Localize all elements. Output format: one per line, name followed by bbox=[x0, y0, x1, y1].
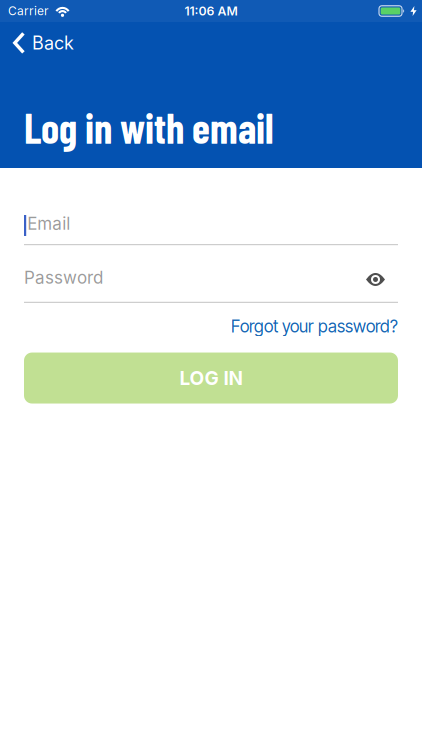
staticText: 11:06 AM bbox=[184, 4, 237, 18]
button[interactable]: Password bbox=[24, 245, 398, 303]
button[interactable]: LOG IN bbox=[24, 352, 398, 403]
button[interactable]: Back bbox=[0, 32, 74, 54]
staticText: LOG IN bbox=[179, 366, 242, 389]
staticText: Log in with email bbox=[24, 103, 274, 152]
staticText: Password bbox=[24, 267, 103, 288]
button[interactable]: Forgot your password? bbox=[231, 316, 398, 337]
staticText: Back bbox=[32, 32, 74, 54]
staticText: Forgot your password? bbox=[231, 316, 398, 337]
staticText: Email bbox=[27, 213, 70, 234]
staticText: Carrier bbox=[8, 4, 49, 18]
button[interactable]: Email bbox=[24, 168, 398, 245]
